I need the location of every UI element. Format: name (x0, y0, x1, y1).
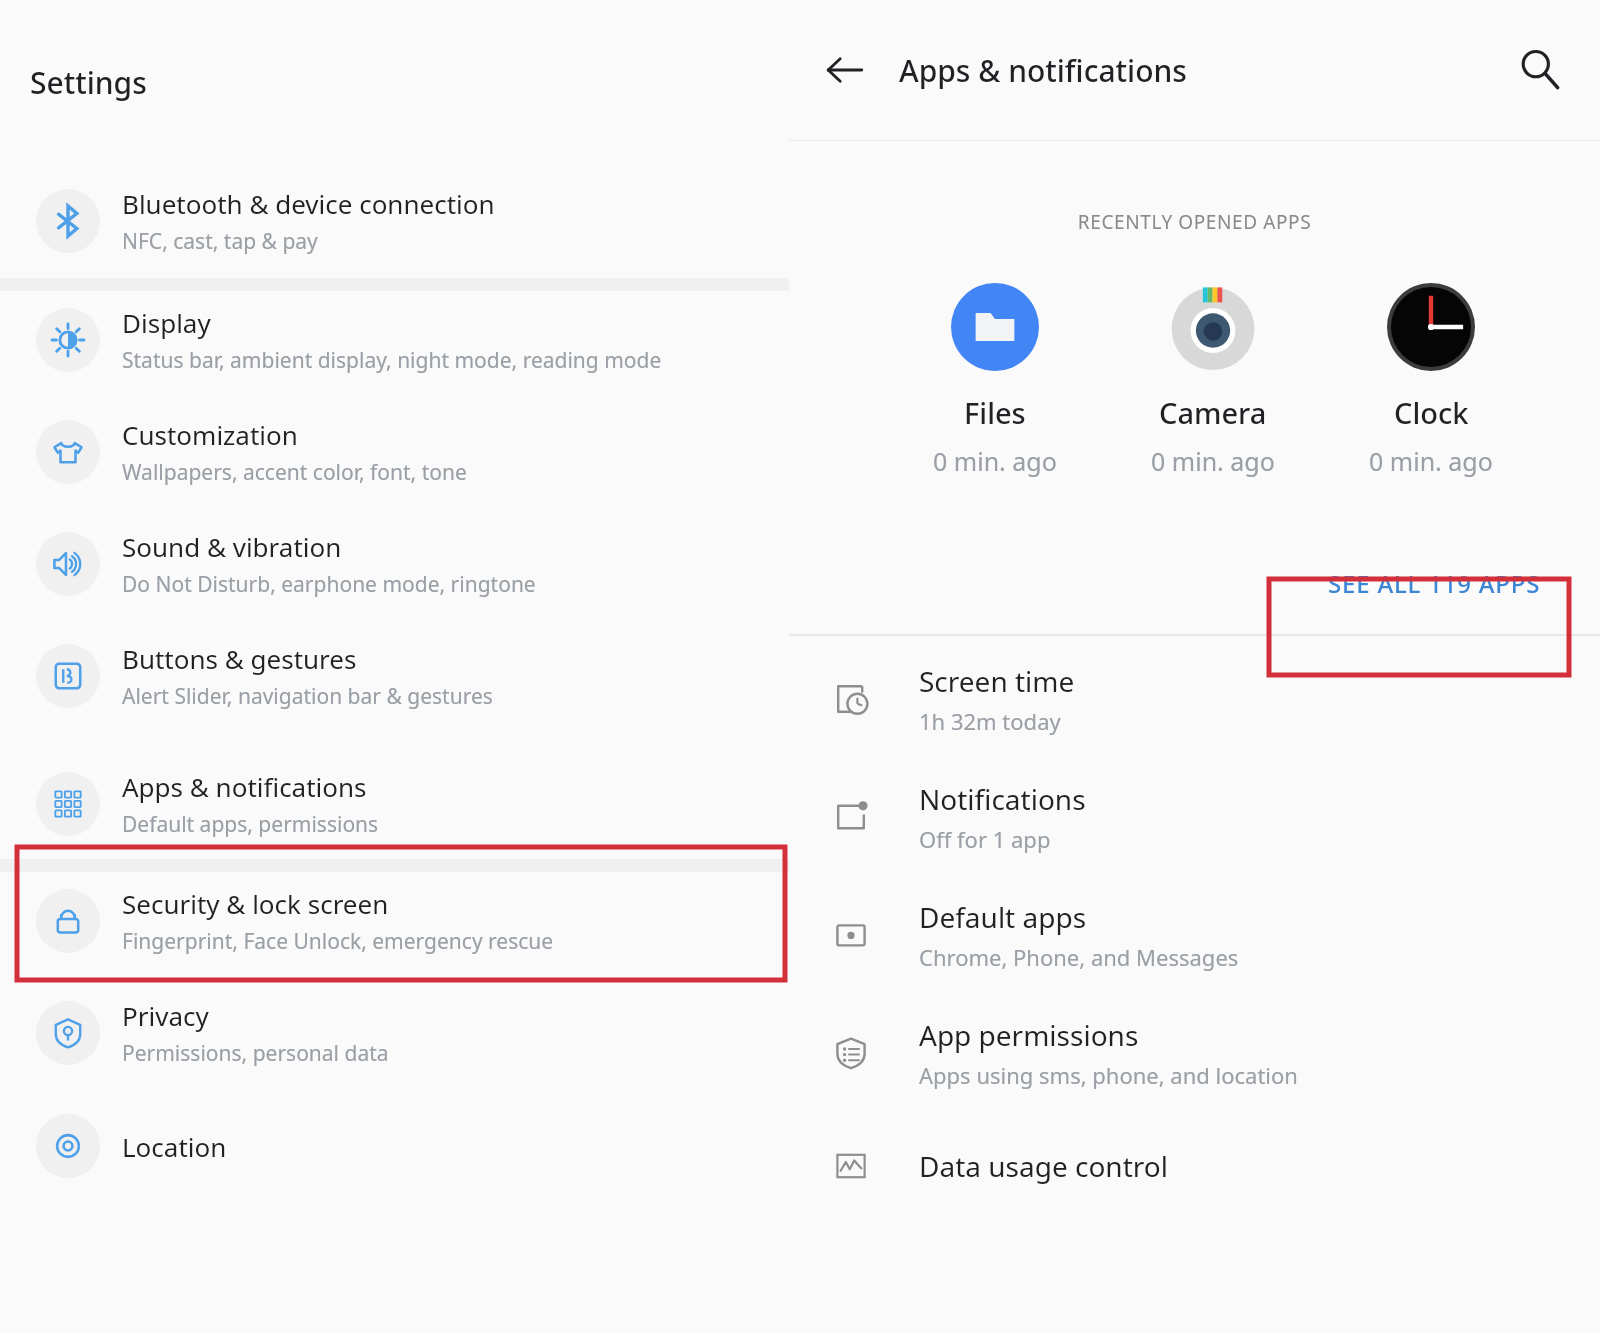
staticText: Buttons & gestures (122, 641, 357, 676)
button[interactable]: Sound & vibration (0, 523, 789, 605)
staticText: 1h 32m today (919, 706, 1061, 736)
button[interactable]: Default apps (789, 894, 1600, 976)
button[interactable]: Files (885, 283, 1104, 478)
staticText: Data usage control (919, 1147, 1168, 1185)
button[interactable]: Buttons & gestures (0, 635, 789, 717)
button[interactable]: Screen time (789, 658, 1600, 740)
staticText: Permissions, personal data (122, 1039, 389, 1068)
button[interactable]: Display (0, 299, 789, 381)
staticText: Customization (122, 417, 298, 452)
staticText: Default apps (919, 898, 1087, 936)
button[interactable]: Security & lock screen (0, 880, 789, 962)
staticText: Apps & notifications (122, 769, 367, 804)
staticText: Chrome, Phone, and Messages (919, 942, 1239, 972)
staticText: Alert Slider, navigation bar & gestures (122, 682, 493, 711)
staticText: Privacy (122, 998, 209, 1033)
staticText: Apps using sms, phone, and location (919, 1060, 1298, 1090)
button[interactable]: Data usage control (789, 1130, 1600, 1202)
staticText: Fingerprint, Face Unlock, emergency resc… (122, 927, 554, 956)
button[interactable]: Camera (1104, 283, 1322, 478)
button[interactable]: Notifications (789, 776, 1600, 858)
button[interactable]: Bluetooth & device connection (0, 180, 789, 262)
staticText: Display (122, 305, 211, 340)
button[interactable]: Clock (1322, 283, 1540, 478)
staticText: Wallpapers, accent color, font, tone (122, 458, 467, 487)
staticText: Do Not Disturb, earphone mode, ringtone (122, 570, 536, 599)
staticText: NFC, cast, tap & pay (122, 227, 318, 256)
button[interactable]: Customization (0, 411, 789, 493)
staticText: 0 min. ago (1369, 444, 1493, 478)
staticText: SEE ALL 119 APPS (1328, 567, 1541, 600)
staticText: Security & lock screen (122, 886, 389, 921)
staticText: Apps & notifications (899, 50, 1187, 91)
staticText: Notifications (919, 780, 1086, 818)
staticText: Clock (1394, 393, 1469, 432)
staticText: App permissions (919, 1016, 1139, 1054)
staticText: Files (964, 393, 1026, 432)
staticText: Sound & vibration (122, 529, 342, 564)
staticText: Default apps, permissions (122, 810, 379, 839)
button[interactable]: App permissions (789, 1012, 1600, 1094)
staticText: Settings (30, 62, 147, 103)
staticText: Status bar, ambient display, night mode,… (122, 346, 662, 375)
button[interactable]: SEE ALL 119 APPS (1291, 540, 1578, 626)
button[interactable]: Privacy (0, 992, 789, 1074)
button[interactable]: Search (1510, 40, 1570, 100)
staticText: Camera (1159, 393, 1267, 432)
staticText: RECENTLY OPENED APPS (789, 209, 1600, 235)
button[interactable]: Apps & notifications (0, 763, 789, 845)
button[interactable]: Back (815, 40, 875, 100)
staticText: Screen time (919, 662, 1075, 700)
staticText: 0 min. ago (1151, 444, 1275, 478)
staticText: Off for 1 app (919, 824, 1051, 854)
staticText: 0 min. ago (933, 444, 1057, 478)
button[interactable]: Location (0, 1108, 789, 1184)
staticText: Bluetooth & device connection (122, 186, 495, 221)
staticText: Location (122, 1129, 227, 1164)
